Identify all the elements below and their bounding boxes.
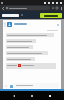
button[interactable] bbox=[6, 33, 54, 37]
button[interactable]: Emoji bbox=[9, 84, 13, 88]
button[interactable]: Wattoo home bbox=[2, 14, 19, 17]
button[interactable]: Address bar bbox=[5, 6, 50, 10]
button[interactable] bbox=[6, 45, 33, 49]
button[interactable]: Close chat bbox=[3, 20, 61, 28]
button[interactable]: Close chat bbox=[55, 22, 60, 27]
button[interactable] bbox=[6, 39, 36, 43]
button[interactable]: Attach file bbox=[4, 84, 8, 88]
button[interactable] bbox=[6, 57, 35, 61]
button[interactable] bbox=[6, 63, 56, 69]
button[interactable] bbox=[40, 13, 62, 18]
button[interactable] bbox=[6, 51, 48, 55]
button[interactable]: More options bbox=[59, 6, 63, 10]
button[interactable]: Downloads bbox=[51, 6, 55, 10]
button[interactable]: Recent apps bbox=[46, 92, 54, 100]
button[interactable]: Bookmark bbox=[55, 6, 59, 10]
button[interactable]: Home bbox=[28, 92, 36, 100]
button[interactable]: Back bbox=[1, 6, 5, 10]
button[interactable] bbox=[14, 83, 59, 88]
button[interactable]: Back bbox=[10, 92, 18, 100]
